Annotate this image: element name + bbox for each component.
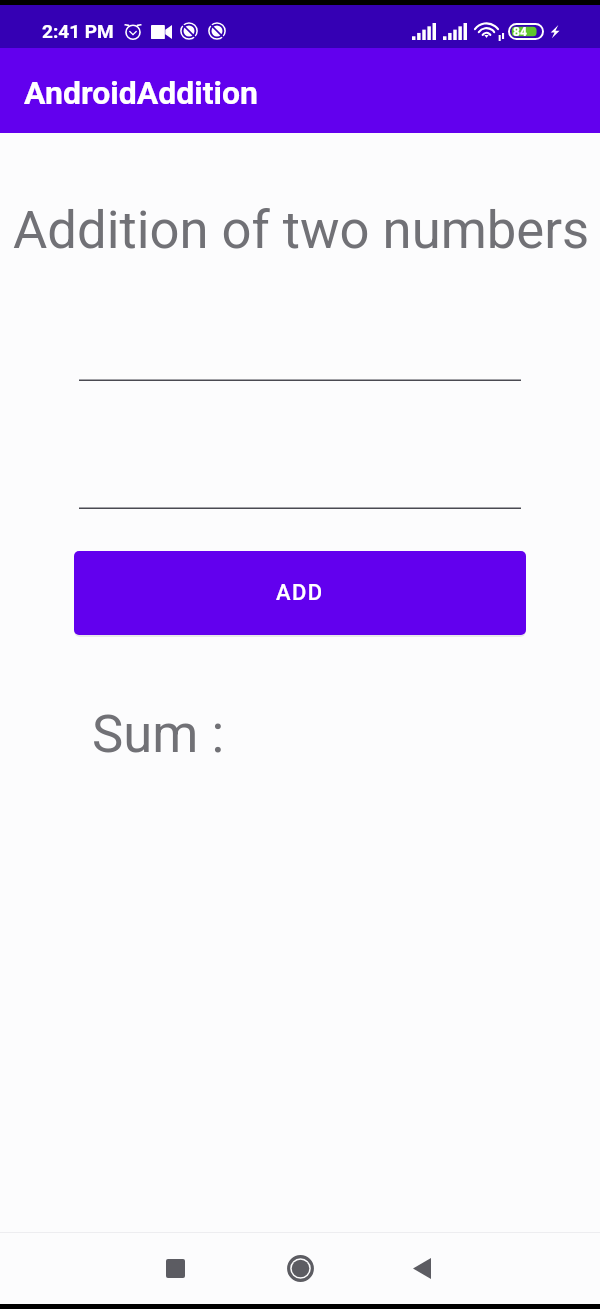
button[interactable]: ADD (74, 551, 526, 635)
button[interactable]: Back (363, 1232, 488, 1304)
staticText: 2:41 PM (42, 20, 114, 42)
staticText: AndroidAddition (24, 74, 259, 112)
button[interactable]: Home (238, 1232, 363, 1304)
button[interactable]: Recent apps (113, 1232, 238, 1304)
staticText: ADD (276, 580, 324, 606)
staticText: Sum : (92, 703, 225, 765)
staticText: Addition of two numbers (13, 199, 590, 261)
staticText: 84 (513, 25, 527, 39)
